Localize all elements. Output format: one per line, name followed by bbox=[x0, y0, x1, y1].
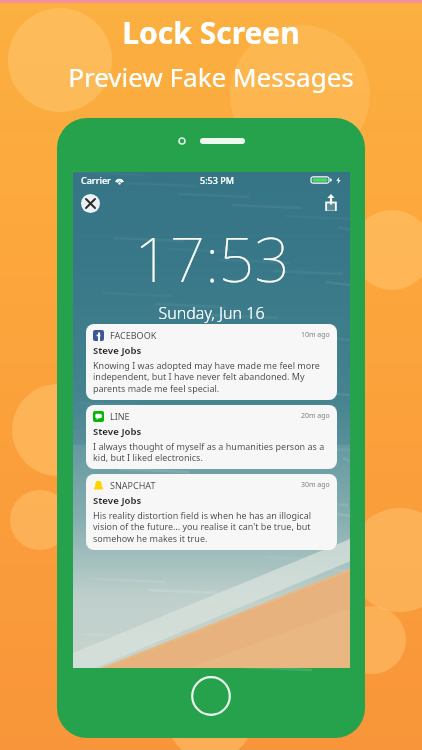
staticText: 20m ago bbox=[301, 411, 330, 421]
staticText: 10m ago bbox=[301, 330, 330, 340]
button[interactable]: LINE bbox=[86, 405, 337, 469]
staticText: Steve Jobs bbox=[93, 425, 142, 438]
staticText: SNAPCHAT bbox=[110, 479, 156, 491]
staticText: Preview Fake Messages bbox=[68, 59, 354, 94]
staticText: 30m ago bbox=[301, 480, 330, 490]
button[interactable]: Share bbox=[320, 192, 342, 214]
staticText: FACEBOOK bbox=[110, 329, 157, 341]
staticText: LINE bbox=[110, 410, 130, 422]
staticText: Steve Jobs bbox=[93, 494, 142, 507]
button[interactable]: SNAPCHAT bbox=[86, 474, 337, 550]
staticText: His reality distortion field is when he … bbox=[93, 509, 330, 545]
staticText: Knowing I was adopted may have made me f… bbox=[93, 359, 330, 395]
staticText: I always thought of myself as a humaniti… bbox=[93, 440, 330, 464]
button[interactable]: Home bbox=[191, 676, 231, 716]
button[interactable]: FACEBOOK bbox=[86, 324, 337, 400]
staticText: 17:53 bbox=[134, 216, 290, 300]
staticText: Steve Jobs bbox=[93, 344, 142, 357]
staticText: Lock Screen bbox=[122, 12, 300, 53]
staticText: 5:53 PM bbox=[200, 174, 234, 186]
staticText: Carrier bbox=[81, 174, 111, 186]
button[interactable]: Close bbox=[81, 194, 100, 213]
staticText: Sunday, Jun 16 bbox=[158, 302, 265, 324]
